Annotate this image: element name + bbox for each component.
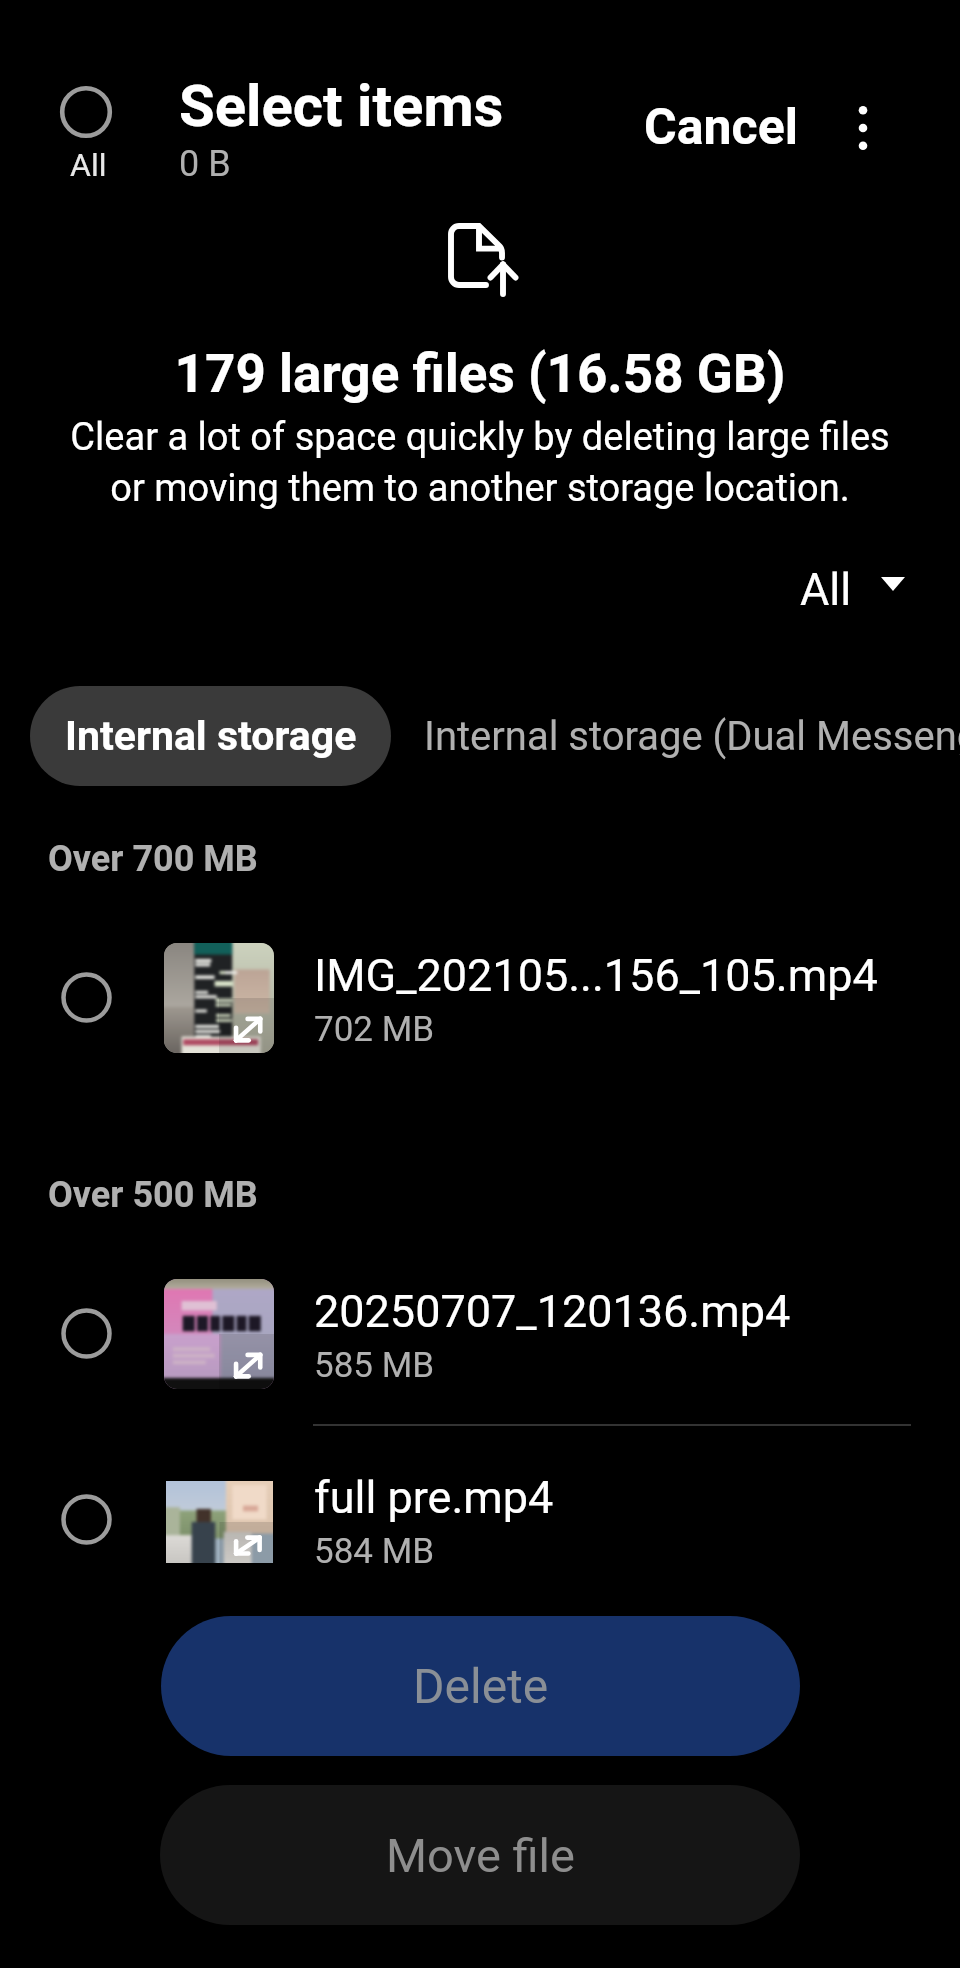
button[interactable]: All xyxy=(776,546,928,622)
button[interactable]: All xyxy=(50,76,122,188)
staticText: Over 500 MB xyxy=(48,1174,258,1216)
staticText: 0 B xyxy=(179,143,231,185)
button[interactable]: Select IMG_202105...156_105.mp4 xyxy=(0,922,960,1072)
staticText: IMG_202105...156_105.mp4 xyxy=(314,949,878,1002)
staticText: Internal storage xyxy=(65,712,357,760)
button[interactable]: Select IMG_202105...156_105.mp4 xyxy=(40,951,133,1044)
staticText: Over 700 MB xyxy=(48,838,258,880)
staticText: full pre.mp4 xyxy=(314,1471,554,1524)
button[interactable]: Move file xyxy=(160,1785,800,1925)
staticText: All xyxy=(70,146,107,184)
staticText: Cancel xyxy=(644,98,798,157)
button[interactable]: Select full pre.mp4 xyxy=(40,1473,133,1566)
staticText: 702 MB xyxy=(314,1009,435,1050)
button[interactable]: Cancel xyxy=(619,84,823,171)
staticText: Internal storage (Dual Messenger) xyxy=(424,713,960,760)
staticText: All xyxy=(800,563,852,616)
staticText: 20250707_120136.mp4 xyxy=(314,1285,791,1338)
button[interactable]: Select 20250707_120136.mp4 xyxy=(40,1287,133,1380)
staticText: 584 MB xyxy=(314,1531,435,1572)
staticText: Move file xyxy=(386,1828,575,1883)
button[interactable]: Select full pre.mp4 xyxy=(0,1444,960,1594)
button[interactable]: More options xyxy=(827,92,899,164)
staticText: 179 large files (16.58 GB) xyxy=(0,343,960,405)
button[interactable]: Internal storage (Dual Messenger) xyxy=(391,686,960,786)
button[interactable]: Delete xyxy=(161,1616,800,1756)
button[interactable]: Select 20250707_120136.mp4 xyxy=(0,1258,960,1408)
staticText: Select items xyxy=(179,72,504,140)
staticText: 585 MB xyxy=(314,1345,435,1386)
staticText: Delete xyxy=(413,1658,549,1714)
button[interactable]: Internal storage xyxy=(30,686,391,786)
staticText: Clear a lot of space quickly by deleting… xyxy=(0,415,960,511)
